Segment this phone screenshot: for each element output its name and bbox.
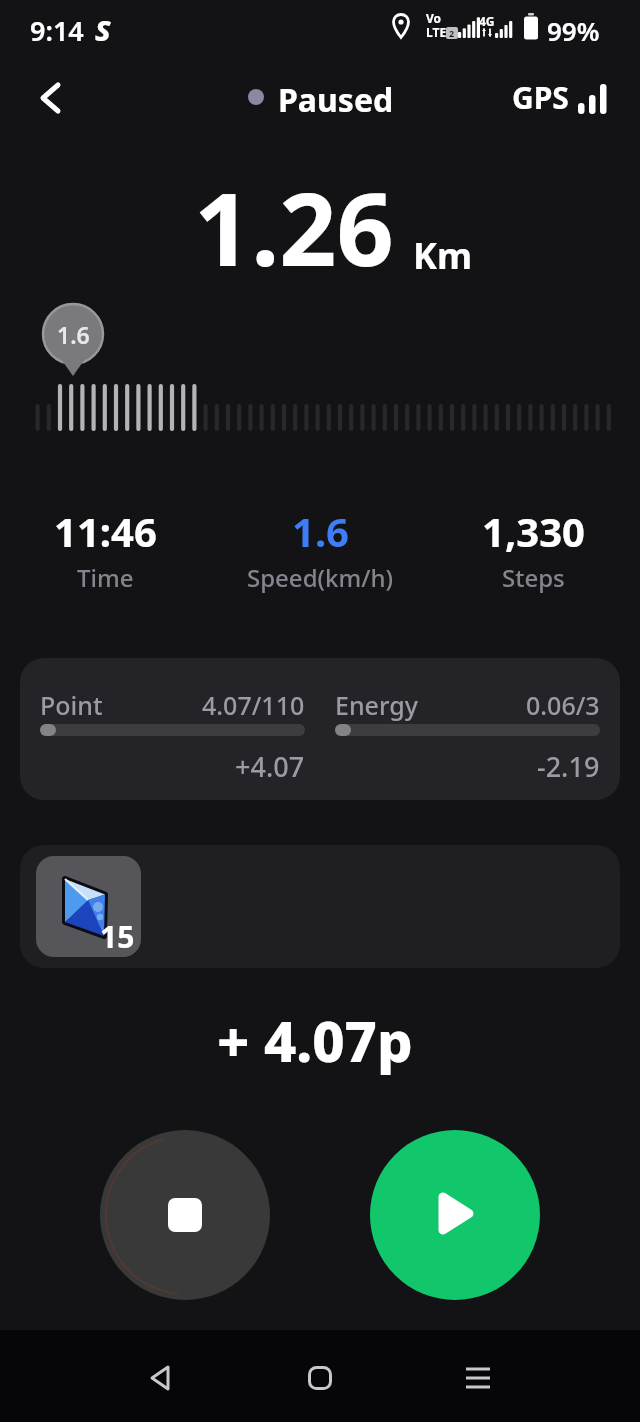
staticText: +4.07 (235, 748, 305, 785)
button[interactable] (370, 1130, 540, 1300)
staticText: Energy (335, 688, 418, 722)
staticText: 1,330 (482, 504, 585, 558)
staticText: 15 (100, 916, 135, 957)
staticText: 9:14 (30, 12, 84, 49)
staticText: Point (40, 688, 103, 722)
staticText: 1.26 (194, 159, 394, 295)
staticText: Km (413, 231, 473, 280)
button[interactable] (288, 1346, 352, 1410)
staticText: 0.06/3 (526, 688, 600, 722)
button[interactable]: Point (20, 658, 620, 800)
staticText: 1.6 (57, 319, 90, 350)
staticText: GPS (512, 77, 569, 118)
button[interactable]: 15 (20, 845, 620, 968)
staticText: Speed(km/h) (247, 561, 393, 594)
button[interactable]: GPS (500, 70, 616, 124)
staticText: 4G (479, 13, 495, 29)
staticText: + 4.07p (217, 1002, 413, 1078)
button[interactable] (446, 1346, 510, 1410)
staticText: -2.19 (537, 748, 600, 785)
staticText: Time (77, 561, 134, 594)
staticText: LTE (426, 24, 447, 40)
staticText: 4.07/110 (202, 688, 305, 722)
staticText: Steps (502, 561, 565, 594)
staticText: 1.6 (292, 504, 349, 558)
button[interactable] (128, 1346, 192, 1410)
staticText: 11:46 (54, 504, 157, 558)
button[interactable]: 15 (36, 856, 141, 957)
staticText: 99% (547, 13, 600, 48)
button[interactable] (24, 72, 76, 124)
staticText: S (95, 10, 111, 49)
staticText: Vo (426, 10, 442, 26)
staticText: Paused (278, 78, 394, 122)
staticText: 2 (449, 27, 455, 39)
button[interactable] (100, 1130, 270, 1300)
